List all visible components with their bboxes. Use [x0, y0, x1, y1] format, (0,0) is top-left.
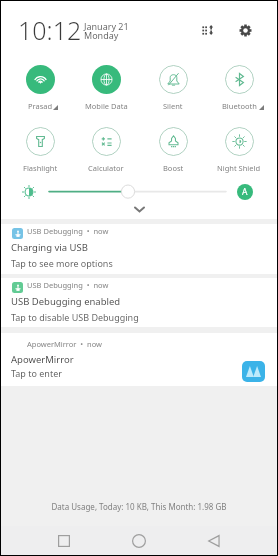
staticText: January 21 — [84, 20, 129, 32]
button[interactable]: Silent — [140, 65, 206, 111]
staticText: Bluetooth — [222, 101, 257, 111]
button[interactable]: ApowerMirror • now — [0, 333, 278, 386]
staticText: USB Debugging enabled — [11, 295, 121, 308]
button[interactable]: Recents — [42, 526, 86, 556]
staticText: Silent — [163, 101, 183, 111]
button[interactable]: Open ApowerMirror — [242, 361, 265, 382]
button[interactable]: USB Debugging • now — [0, 278, 278, 327]
staticText: USB Debugging • now — [27, 226, 109, 236]
button[interactable]: Back — [192, 526, 236, 556]
staticText: ApowerMirror — [11, 353, 74, 366]
staticText: Calculator — [88, 163, 124, 173]
staticText: USB Debugging • now — [27, 280, 109, 290]
staticText: Tap to enter — [11, 367, 62, 379]
button[interactable]: Home — [117, 526, 161, 556]
staticText: Tap to disable USB Debugging — [11, 311, 139, 323]
button[interactable]: Expand — [134, 206, 145, 213]
staticText: Mobile Data — [85, 101, 128, 111]
button[interactable]: Calculator — [73, 127, 139, 173]
button[interactable]: USB Debugging • now — [0, 224, 278, 274]
button[interactable]: Brightness — [21, 184, 37, 200]
staticText: Boost — [163, 163, 184, 173]
staticText: Night Shield — [217, 163, 261, 173]
staticText: A — [242, 186, 248, 198]
button[interactable]: Bluetooth — [206, 65, 272, 111]
staticText: Tap to see more options — [11, 257, 113, 269]
staticText: Flashlight — [23, 163, 58, 173]
staticText: ApowerMirror • now — [27, 339, 102, 349]
staticText: Charging via USB — [11, 241, 88, 254]
button[interactable]: Data usage — [197, 19, 219, 41]
staticText: 10:12 — [18, 13, 82, 47]
staticText: Data Usage, Today: 10 KB, This Month: 1.… — [0, 501, 278, 512]
staticText: Prasad — [28, 101, 53, 111]
button[interactable]: Flashlight — [7, 127, 73, 173]
button[interactable]: Mobile Data — [73, 65, 139, 111]
button[interactable]: Boost — [140, 127, 206, 173]
staticText: Monday — [84, 29, 119, 41]
button[interactable]: Prasad — [7, 65, 73, 111]
button[interactable]: Settings — [234, 19, 256, 41]
button[interactable]: Night Shield — [206, 127, 272, 173]
button[interactable]: A — [237, 184, 253, 200]
